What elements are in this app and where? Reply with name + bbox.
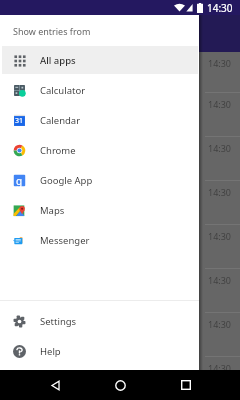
button[interactable]: Help [0,336,199,366]
button[interactable]: Calculator [0,75,199,105]
button[interactable]: Back [40,370,70,400]
staticText: Google App [40,174,93,187]
staticText: 14:30 [208,57,232,69]
button[interactable]: g [0,165,199,195]
staticText: Chrome [40,144,76,157]
staticText: All apps [40,54,76,67]
staticText: 14:30 [208,318,232,330]
staticText: Messenger [40,234,90,247]
staticText: 14:30 [208,274,232,286]
staticText: Calendar [40,114,81,127]
staticText: Maps [40,204,65,217]
staticText: Help [40,345,61,358]
staticText: 14:30 [207,1,233,15]
button[interactable]: 31 [0,105,199,135]
staticText: 14:30 [208,230,232,242]
button[interactable]: Maps [0,195,199,225]
button[interactable]: Messenger [0,225,199,255]
button[interactable]: Chrome [0,135,199,165]
staticText: 14:30 [208,142,232,154]
staticText: 14:30 [208,362,232,374]
button[interactable]: Recents [171,370,201,400]
staticText: 14:30 [208,186,232,198]
button[interactable]: All apps [0,45,199,75]
staticText: Calculator [40,84,86,97]
staticText: Show entries from [13,25,91,37]
staticText: Settings [40,315,77,328]
staticText: 14:30 [208,98,232,110]
staticText: 31 [15,116,24,126]
button[interactable]: Settings [0,306,199,336]
button[interactable]: Home [105,370,135,400]
staticText: g [16,174,23,187]
